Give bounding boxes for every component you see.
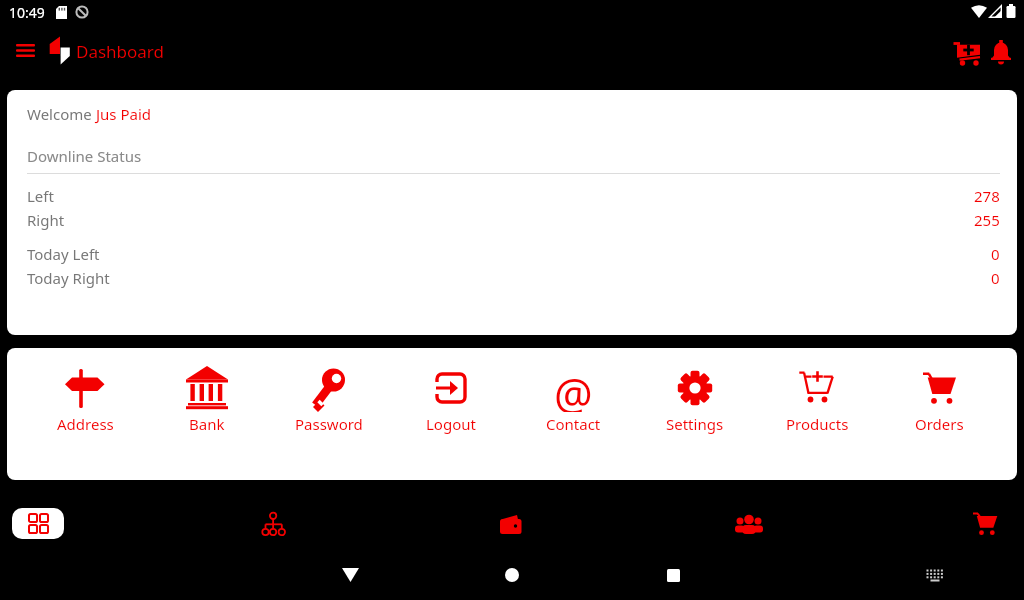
button[interactable] bbox=[336, 561, 364, 589]
staticText: Logout bbox=[426, 414, 476, 434]
staticText: Settings bbox=[666, 414, 724, 434]
button[interactable] bbox=[12, 508, 64, 539]
button[interactable]: @ bbox=[512, 364, 634, 434]
button[interactable] bbox=[259, 510, 287, 538]
staticText: Products bbox=[786, 414, 849, 434]
button[interactable] bbox=[498, 561, 526, 589]
staticText: Welcome bbox=[27, 104, 96, 124]
button[interactable]: Logout bbox=[390, 364, 512, 434]
button[interactable]: Bank bbox=[146, 364, 268, 434]
staticText: 255 bbox=[974, 210, 1000, 230]
staticText: 0 bbox=[991, 244, 1000, 264]
staticText: Bank bbox=[189, 414, 225, 434]
staticText: Address bbox=[57, 414, 114, 434]
staticText: Password bbox=[295, 414, 363, 434]
button[interactable] bbox=[971, 510, 999, 538]
staticText: 10:49 bbox=[9, 3, 45, 22]
staticText: @ bbox=[554, 364, 593, 412]
button[interactable]: Address bbox=[24, 364, 146, 434]
staticText: Downline Status bbox=[27, 146, 142, 166]
staticText: 0 bbox=[991, 268, 1000, 288]
button[interactable] bbox=[987, 38, 1015, 68]
button[interactable] bbox=[735, 510, 763, 538]
button[interactable]: Password bbox=[268, 364, 390, 434]
button[interactable] bbox=[8, 36, 42, 64]
staticText: Today Right bbox=[27, 268, 110, 288]
staticText: Dashboard bbox=[76, 40, 165, 62]
button[interactable] bbox=[950, 38, 984, 68]
staticText: Left bbox=[27, 186, 54, 206]
staticText: Today Left bbox=[27, 244, 100, 264]
button[interactable]: Orders bbox=[878, 364, 1000, 434]
button[interactable] bbox=[659, 561, 687, 589]
staticText: Orders bbox=[915, 414, 964, 434]
staticText: Contact bbox=[546, 414, 601, 434]
button[interactable]: Products bbox=[756, 364, 878, 434]
staticText: 278 bbox=[974, 186, 1000, 206]
button[interactable] bbox=[925, 566, 945, 584]
staticText: Right bbox=[27, 210, 65, 230]
button[interactable]: Settings bbox=[634, 364, 756, 434]
staticText: Jus Paid bbox=[96, 104, 152, 124]
button[interactable] bbox=[496, 510, 524, 538]
